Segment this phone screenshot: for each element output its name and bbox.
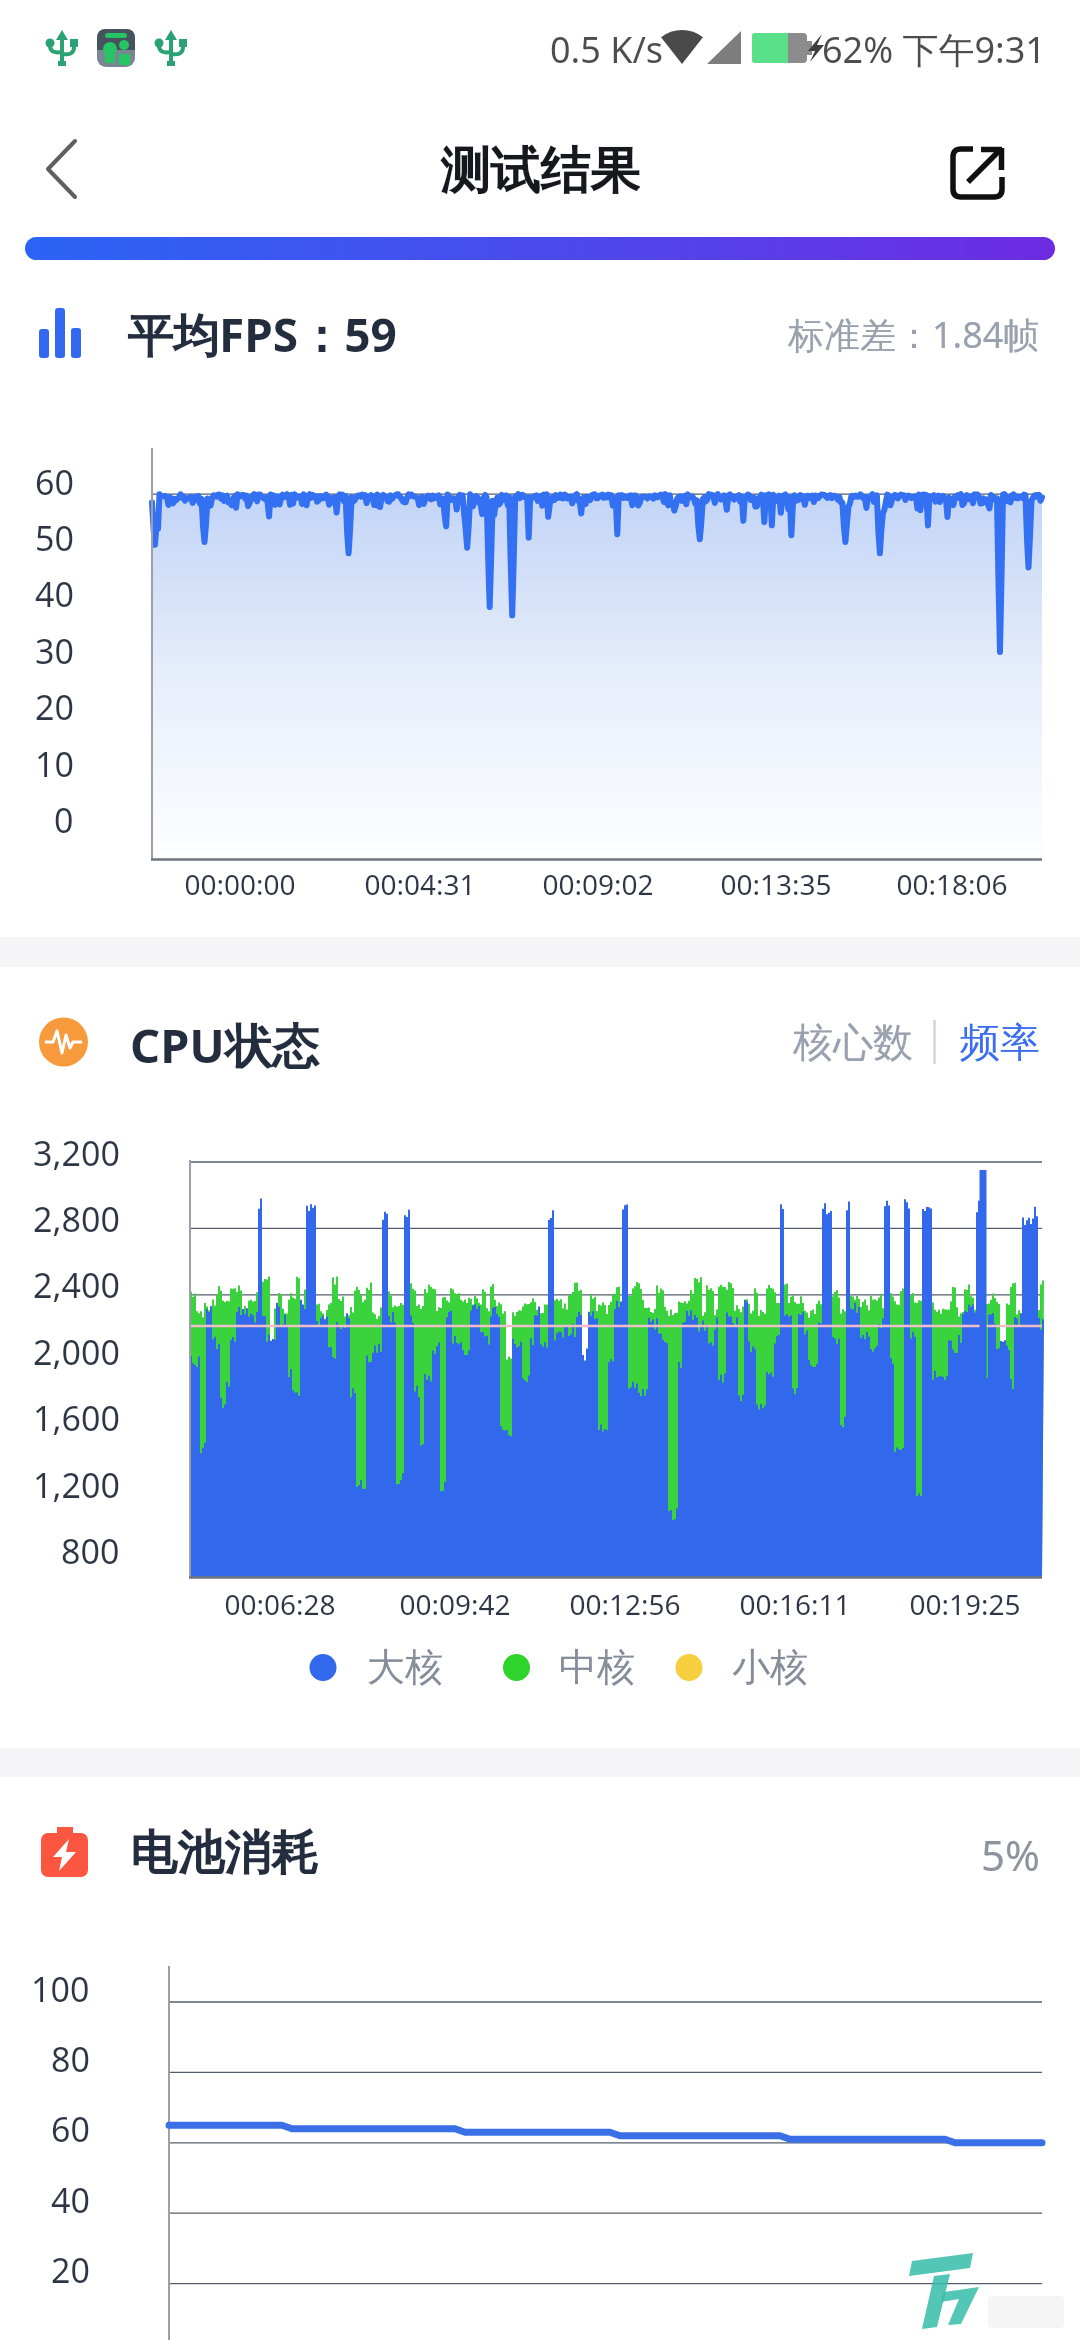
staticText: 80 [51,2036,90,2082]
staticText: 频率 [960,1017,1040,1067]
staticText: 大核 [367,1643,443,1691]
staticText: 5% [981,1826,1040,1883]
staticText: 00:09:42 [399,1585,511,1623]
staticText: 40 [51,2177,90,2223]
staticText: 100 [31,1966,90,2012]
button[interactable]: 核心数 [775,1008,930,1076]
staticText: 00:18:06 [896,865,1008,903]
staticText: CPU状态 [130,1013,319,1077]
staticText: 中核 [559,1643,635,1691]
staticText: 00:13:35 [720,865,832,903]
button[interactable] [30,130,120,220]
staticText: 62% 下午9:31 [822,25,1046,74]
staticText: 0.5 K/s [550,25,664,74]
staticText: 10 [35,741,74,787]
staticText: 2,000 [33,1329,120,1375]
staticText: 20 [51,2247,90,2293]
staticText: 00:06:28 [224,1585,336,1623]
staticText: 00:00:00 [184,865,296,903]
staticText: 标准差：1.84帧 [788,310,1040,359]
staticText: 3,200 [33,1130,120,1176]
staticText: 1,600 [33,1395,120,1441]
staticText: 2,800 [33,1196,120,1242]
staticText: 电池消耗 [130,1824,318,1883]
staticText: 60 [51,2106,90,2152]
staticText: 20 [35,684,74,730]
staticText: 50 [35,515,74,561]
staticText: 平均FPS：59 [127,303,397,366]
staticText: 0 [54,797,74,843]
staticText: 2,400 [33,1262,120,1308]
button[interactable] [940,130,1030,220]
staticText: 00:19:25 [909,1585,1021,1623]
staticText: 00:04:31 [364,865,476,903]
staticText: 测试结果 [440,140,640,202]
staticText: 核心数 [793,1017,913,1067]
staticText: 00:09:02 [542,865,654,903]
staticText: 00:12:56 [569,1585,681,1623]
staticText: 800 [61,1528,120,1574]
staticText: 60 [35,459,74,505]
button[interactable]: 频率 [945,1008,1055,1076]
staticText: 30 [35,628,74,674]
staticText: 40 [35,571,74,617]
staticText: 00:16:11 [739,1585,851,1623]
staticText: 1,200 [33,1462,120,1508]
staticText: 小核 [732,1643,808,1691]
